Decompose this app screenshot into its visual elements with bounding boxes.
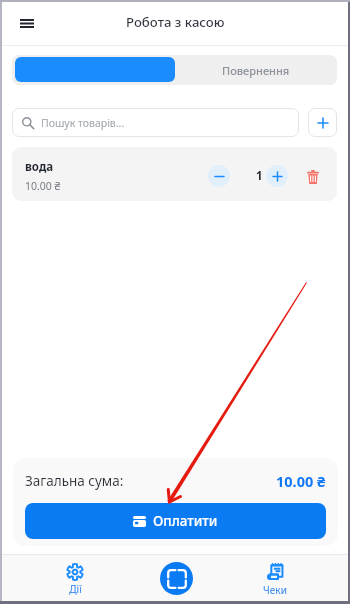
button[interactable]: Scan (160, 562, 193, 595)
staticText: 10.00 ₴ (25, 179, 61, 193)
button[interactable]: Пошук товарів... (12, 108, 299, 137)
button[interactable]: Delete (302, 166, 324, 188)
button[interactable]: Increase quantity (266, 165, 288, 187)
button[interactable]: Decrease quantity (208, 165, 230, 187)
button[interactable]: Повернення (175, 55, 337, 85)
button[interactable]: Чеки (245, 554, 305, 604)
staticText: 10.00 ₴ (276, 471, 326, 491)
staticText: Повернення (222, 63, 290, 78)
staticText: Оплатити (153, 512, 218, 530)
staticText: Загальна сума: (25, 472, 124, 490)
staticText: Робота з касою (126, 13, 225, 31)
button[interactable]: Add product (308, 108, 337, 137)
staticText: 1 (256, 168, 263, 184)
button[interactable]: вода (12, 147, 337, 201)
button[interactable] (15, 57, 175, 82)
staticText: Чеки (263, 583, 287, 597)
button[interactable]: Menu (12, 8, 42, 38)
button[interactable]: Оплатити (25, 503, 326, 539)
button[interactable]: Дії (45, 554, 105, 604)
staticText: Дії (69, 582, 82, 596)
staticText: вода (25, 159, 54, 175)
staticText: Пошук товарів... (41, 116, 125, 130)
